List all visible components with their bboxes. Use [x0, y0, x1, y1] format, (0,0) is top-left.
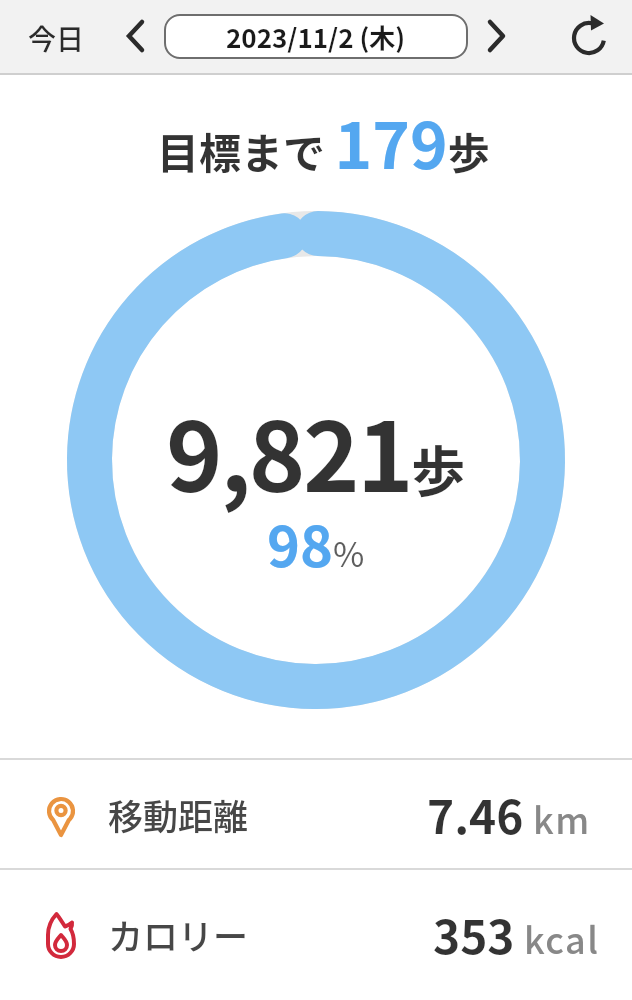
staticText: 目標まで 179歩 — [157, 95, 490, 188]
button[interactable]: 2023/11/2 (木) — [164, 14, 468, 59]
staticText: 9,821歩 — [166, 381, 466, 520]
button[interactable]: カロリー — [0, 869, 632, 1000]
button[interactable] — [478, 16, 514, 56]
staticText: 今日 — [28, 18, 85, 59]
staticText: カロリー — [108, 909, 249, 960]
button[interactable]: 移動距離 — [0, 760, 632, 868]
staticText: 2023/11/2 (木) — [226, 18, 406, 56]
button[interactable] — [567, 15, 611, 59]
staticText: 353 kcal — [433, 901, 600, 968]
button[interactable]: 今日 — [20, 18, 93, 59]
button[interactable] — [118, 16, 154, 56]
staticText: 移動距離 — [108, 789, 249, 840]
staticText: 7.46 km — [427, 781, 591, 848]
staticText: 98% — [267, 502, 365, 583]
